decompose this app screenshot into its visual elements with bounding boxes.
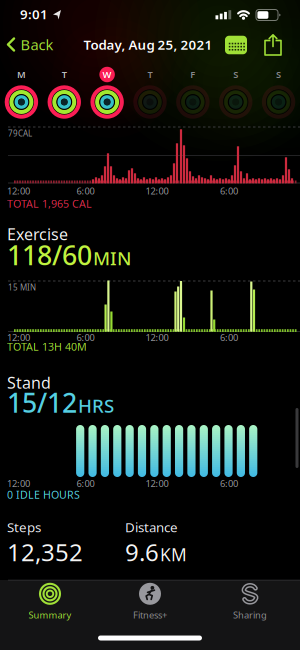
staticText: S	[276, 68, 281, 81]
button[interactable]: Share	[264, 34, 282, 56]
staticText: 9:01	[20, 5, 48, 23]
staticText: 6:00	[76, 477, 94, 490]
staticText: HRS	[78, 393, 114, 418]
staticText: 6:00	[76, 185, 94, 197]
staticText: 12:00	[145, 477, 168, 490]
staticText: 79CAL	[8, 128, 32, 139]
button[interactable]: Sharing	[205, 577, 295, 627]
staticText: T	[62, 68, 67, 81]
staticText: 6:00	[220, 477, 238, 490]
button[interactable]: S activity	[257, 63, 300, 121]
button[interactable]: Choose date	[225, 36, 247, 54]
button[interactable]: Summary	[5, 577, 95, 627]
staticText: Fitness+	[133, 609, 167, 621]
staticText: Back	[20, 35, 53, 54]
button[interactable]: Back	[6, 35, 53, 54]
staticText: 6:00	[76, 331, 94, 344]
staticText: MIN	[93, 246, 131, 270]
staticText: 0 IDLE HOURS	[7, 487, 80, 502]
staticText: 12:00	[7, 331, 30, 344]
staticText: Summary	[28, 609, 71, 621]
button[interactable]: T activity	[128, 63, 171, 121]
staticText: S	[233, 68, 238, 81]
staticText: F	[190, 68, 195, 81]
staticText: Today, Aug 25, 2021	[83, 36, 212, 53]
staticText: M	[17, 68, 26, 81]
staticText: 118/60	[7, 237, 92, 273]
staticText: KM	[160, 543, 187, 566]
button[interactable]: Fitness+	[105, 577, 195, 627]
staticText: TOTAL 1,965 CAL	[7, 196, 92, 211]
staticText: 6:00	[220, 185, 238, 197]
staticText: 15/12	[7, 385, 77, 420]
staticText: 15 MIN	[8, 282, 36, 293]
button[interactable]: M activity	[0, 63, 43, 121]
staticText: 12:00	[145, 185, 168, 197]
button[interactable]: S activity	[214, 63, 257, 121]
staticText: 12:00	[7, 477, 30, 490]
staticText: Stand	[7, 372, 51, 393]
staticText: TOTAL 13H 40M	[7, 339, 87, 354]
staticText: T	[147, 68, 152, 81]
staticText: 12:00	[7, 185, 30, 197]
staticText: Steps	[7, 518, 41, 536]
button[interactable]: F activity	[171, 63, 214, 121]
staticText: 6:00	[220, 331, 238, 344]
staticText: Exercise	[7, 223, 68, 245]
button[interactable]: W activity	[86, 63, 129, 121]
staticText: 12,352	[7, 536, 83, 568]
staticText: Distance	[125, 518, 178, 536]
button[interactable]: T activity	[43, 63, 86, 121]
staticText: Sharing	[233, 609, 267, 621]
staticText: 12:00	[145, 331, 168, 344]
staticText: 9.6	[125, 536, 159, 568]
staticText: W	[103, 68, 112, 81]
